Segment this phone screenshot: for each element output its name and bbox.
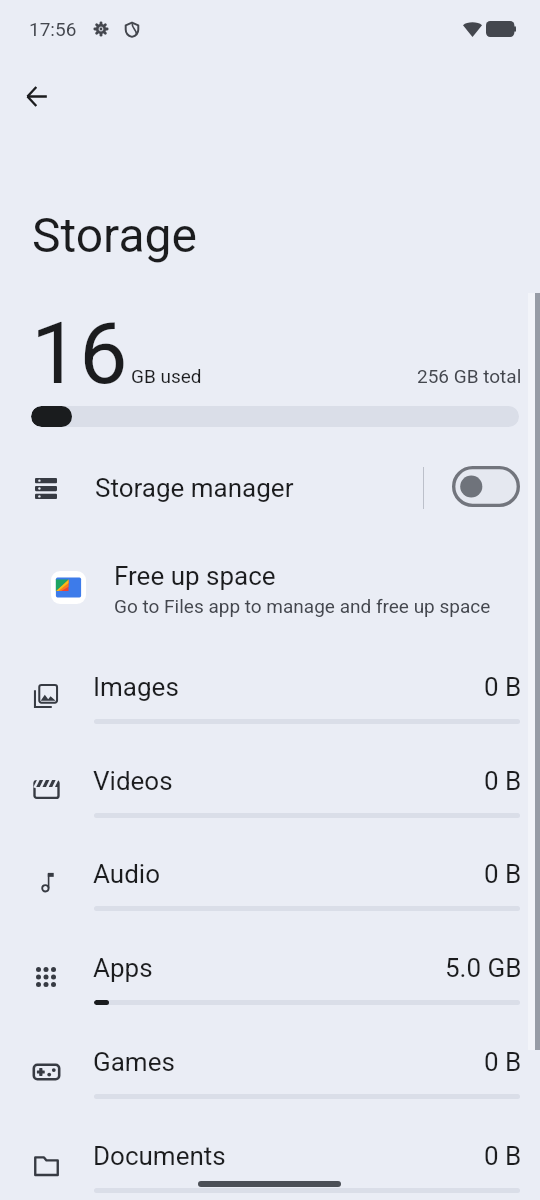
staticText: 17:56 (29, 18, 77, 40)
staticText: Videos (93, 766, 173, 796)
button[interactable]: Toggle storage manager (440, 455, 532, 517)
staticText: Storage (32, 207, 197, 263)
staticText: Images (93, 672, 179, 702)
staticText: Audio (93, 859, 160, 889)
staticText: Free up space (114, 561, 276, 591)
button[interactable]: Apps (0, 933, 540, 1026)
staticText: 0 B (484, 766, 522, 796)
staticText: 0 B (484, 1047, 522, 1077)
button[interactable]: Audio (0, 839, 540, 932)
button[interactable]: Documents (0, 1121, 540, 1200)
staticText: GB used (131, 365, 202, 387)
staticText: Storage manager (95, 473, 294, 503)
button[interactable]: Images (0, 652, 540, 745)
staticText: 0 B (484, 859, 522, 889)
staticText: Apps (93, 953, 153, 983)
button[interactable]: Games (0, 1027, 540, 1120)
staticText: Go to Files app to manage and free up sp… (114, 595, 491, 617)
staticText: 16 (31, 303, 128, 404)
staticText: 0 B (484, 1141, 522, 1171)
staticText: 5.0 GB (445, 953, 522, 983)
button[interactable]: Back (13, 72, 61, 120)
staticText: Documents (93, 1141, 226, 1171)
staticText: Games (93, 1047, 175, 1077)
staticText: 0 B (484, 672, 522, 702)
button[interactable]: Videos (0, 746, 540, 839)
staticText: 256 GB total (417, 365, 522, 387)
button[interactable]: Free up space (0, 552, 540, 626)
button[interactable]: Storage manager (0, 459, 540, 517)
